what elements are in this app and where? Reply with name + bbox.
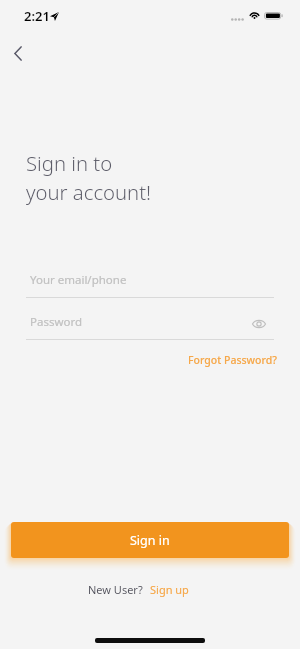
button[interactable]: Forgot Password? — [186, 351, 279, 369]
button[interactable]: Sign in — [11, 522, 289, 558]
staticText: Sign in to your account! — [26, 149, 152, 206]
button[interactable]: Password — [26, 314, 274, 340]
staticText: New User? — [88, 582, 143, 597]
staticText: Your email/phone — [30, 272, 127, 288]
staticText: Forgot Password? — [188, 353, 277, 367]
button[interactable]: Show password — [247, 312, 271, 336]
staticText: Password — [30, 314, 83, 330]
staticText: Sign in — [130, 532, 170, 549]
button[interactable]: Sign up — [149, 582, 190, 597]
staticText: 2:21 — [24, 7, 50, 25]
button[interactable]: Your email/phone — [26, 272, 274, 298]
button[interactable]: Back — [2, 37, 34, 69]
